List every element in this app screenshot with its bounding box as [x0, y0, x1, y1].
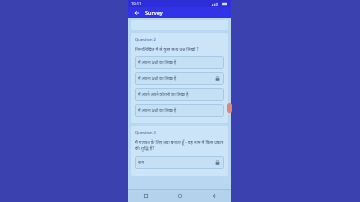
button[interactable]: मैं अपना प्रश्नों का लिखा है [135, 72, 224, 85]
button[interactable]: मैं अपना प्रश्नों का लिखा है [135, 56, 224, 69]
staticText: निम्नलिखित में से कुछ सत्य प्रश्न लिखो ? [135, 46, 199, 52]
button[interactable]: Recent apps [128, 190, 163, 202]
staticText: मैं गणपत्र के लिए क्या बनाता हूँ - वह ना… [135, 139, 224, 151]
button[interactable]: Home [163, 190, 197, 202]
staticText: मैं अपना प्रश्नों का लिखा है [138, 76, 214, 82]
staticText: Survey [145, 9, 163, 16]
button[interactable]: Locked [214, 159, 221, 166]
staticText: मैं अपने अपने कोशनो का लिखा है [138, 92, 221, 98]
staticText: मैं अपना प्रश्नों का लिखा है [138, 60, 221, 66]
staticText: मैं अपना प्रश्नों का लिखा है [138, 108, 221, 114]
staticText: Question 3 [135, 130, 156, 135]
button[interactable]: Locked [214, 75, 221, 82]
staticText: नाम [138, 160, 214, 166]
button[interactable]: मैं अपना प्रश्नों का लिखा है [135, 104, 224, 117]
staticText: Question 2 [135, 37, 156, 42]
button[interactable]: नाम [135, 156, 224, 169]
button[interactable]: Back [197, 190, 231, 202]
button[interactable]: मैं अपने अपने कोशनो का लिखा है [135, 88, 224, 101]
staticText: 10:11 [131, 1, 142, 6]
button[interactable]: Back [132, 8, 141, 17]
